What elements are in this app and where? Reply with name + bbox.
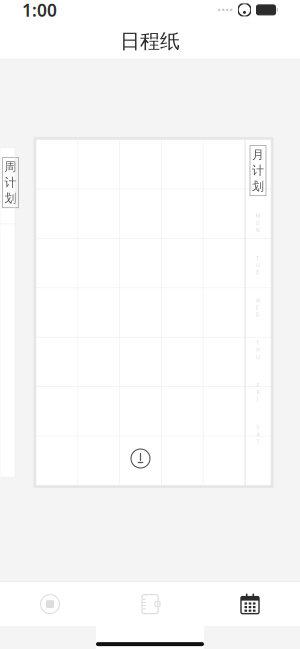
staticText: F R I (256, 381, 259, 403)
button[interactable]: Notebook (100, 582, 200, 626)
staticText: 计 (252, 163, 264, 178)
staticText: W E D (255, 297, 260, 318)
staticText: M O N (255, 212, 260, 233)
staticText: T H U (256, 339, 260, 360)
button[interactable]: Calendar (200, 582, 300, 626)
staticText: 1:00 (22, 0, 57, 21)
staticText: 计 (4, 175, 16, 190)
staticText: 周 (4, 159, 16, 174)
staticText: 划 (4, 191, 16, 206)
button[interactable]: Draw (0, 582, 100, 626)
button[interactable]: 月 (33, 136, 274, 488)
button[interactable]: 周计划 (0, 147, 15, 477)
staticText: S A T (256, 424, 259, 445)
button[interactable]: Download (129, 447, 151, 469)
staticText: 划 (252, 179, 264, 194)
staticText: T U E (256, 254, 260, 276)
staticText: 日程纸 (120, 29, 180, 54)
staticText: 月 (252, 147, 264, 162)
